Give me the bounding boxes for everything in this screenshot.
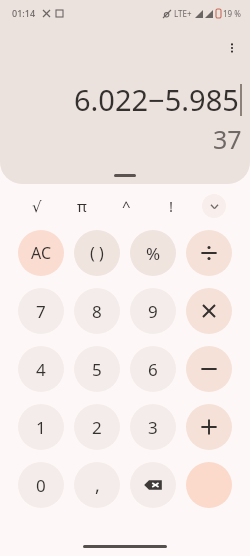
staticText: ! [169, 196, 174, 216]
staticText: 3 [148, 416, 158, 439]
staticText: LTE+ [174, 8, 192, 19]
staticText: 5 [92, 358, 102, 381]
button[interactable]: Divide [186, 230, 232, 276]
button[interactable]: ! [158, 190, 184, 222]
staticText: 1 [36, 416, 46, 439]
staticText: ^ [122, 196, 131, 216]
button[interactable]: 8 [74, 288, 120, 334]
staticText: 0 [36, 474, 46, 497]
button[interactable]: More functions [202, 194, 226, 218]
staticText: ( ) [90, 242, 104, 264]
staticText: AC [31, 242, 52, 264]
button[interactable]: ^ [113, 190, 139, 222]
button[interactable]: 6 [130, 346, 176, 392]
staticText: % [146, 242, 161, 265]
staticText: 6.022−5.985 [74, 80, 239, 119]
button[interactable]: Multiply [186, 288, 232, 334]
staticText: 6 [148, 358, 158, 381]
button[interactable]: Add [186, 404, 232, 450]
staticText: 4 [36, 358, 46, 381]
button[interactable]: 9 [130, 288, 176, 334]
button[interactable]: Equals [186, 462, 232, 508]
button[interactable]: 2 [74, 404, 120, 450]
staticText: 01:14 [12, 7, 36, 19]
button[interactable]: 1 [18, 404, 64, 450]
button[interactable]: 4 [18, 346, 64, 392]
staticText: 19 % [223, 8, 241, 19]
staticText: √ [32, 198, 42, 215]
button[interactable]: Expand [114, 174, 136, 177]
staticText: π [77, 196, 87, 216]
staticText: 7 [36, 300, 46, 323]
button[interactable]: √ [24, 190, 50, 222]
staticText: 37 [213, 122, 242, 156]
button[interactable]: , [74, 462, 120, 508]
button[interactable]: 5 [74, 346, 120, 392]
button[interactable]: % [130, 230, 176, 276]
button[interactable]: Subtract [186, 346, 232, 392]
button[interactable]: More options [220, 36, 244, 60]
button[interactable]: AC [18, 230, 64, 276]
button[interactable]: ( ) [74, 230, 120, 276]
button[interactable]: 3 [130, 404, 176, 450]
button[interactable]: Backspace [130, 462, 176, 508]
staticText: 9 [148, 300, 158, 323]
button[interactable]: 0 [18, 462, 64, 508]
staticText: 8 [92, 300, 102, 323]
staticText: , [95, 473, 100, 498]
staticText: 2 [92, 416, 102, 439]
button[interactable]: π [69, 190, 95, 222]
button[interactable]: 7 [18, 288, 64, 334]
